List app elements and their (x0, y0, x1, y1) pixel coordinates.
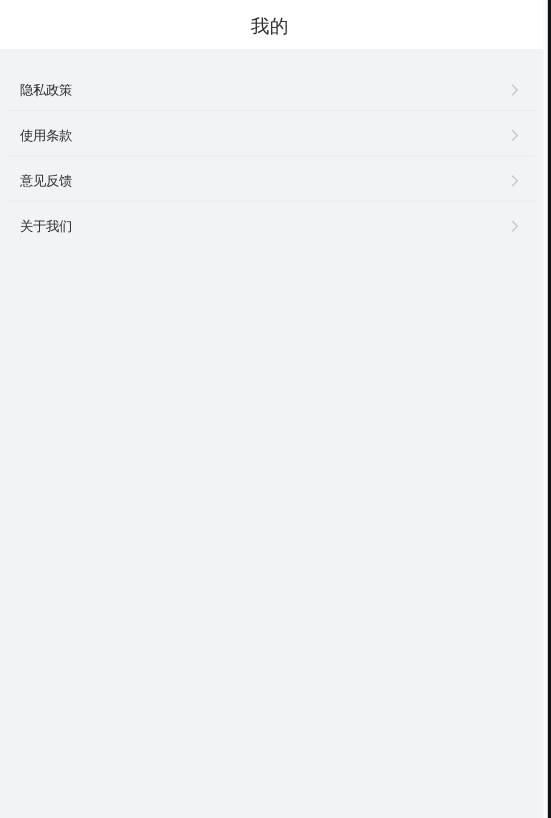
button[interactable]: 使用条款 (0, 111, 543, 156)
staticText: 意见反馈 (20, 173, 72, 189)
staticText: 隐私政策 (20, 82, 72, 98)
button[interactable]: 隐私政策 (0, 66, 543, 111)
staticText: 我的 (251, 15, 289, 38)
button[interactable]: 关于我们 (0, 202, 543, 247)
staticText: 关于我们 (20, 218, 72, 234)
button[interactable]: 意见反馈 (0, 156, 543, 202)
staticText: 使用条款 (20, 127, 72, 144)
